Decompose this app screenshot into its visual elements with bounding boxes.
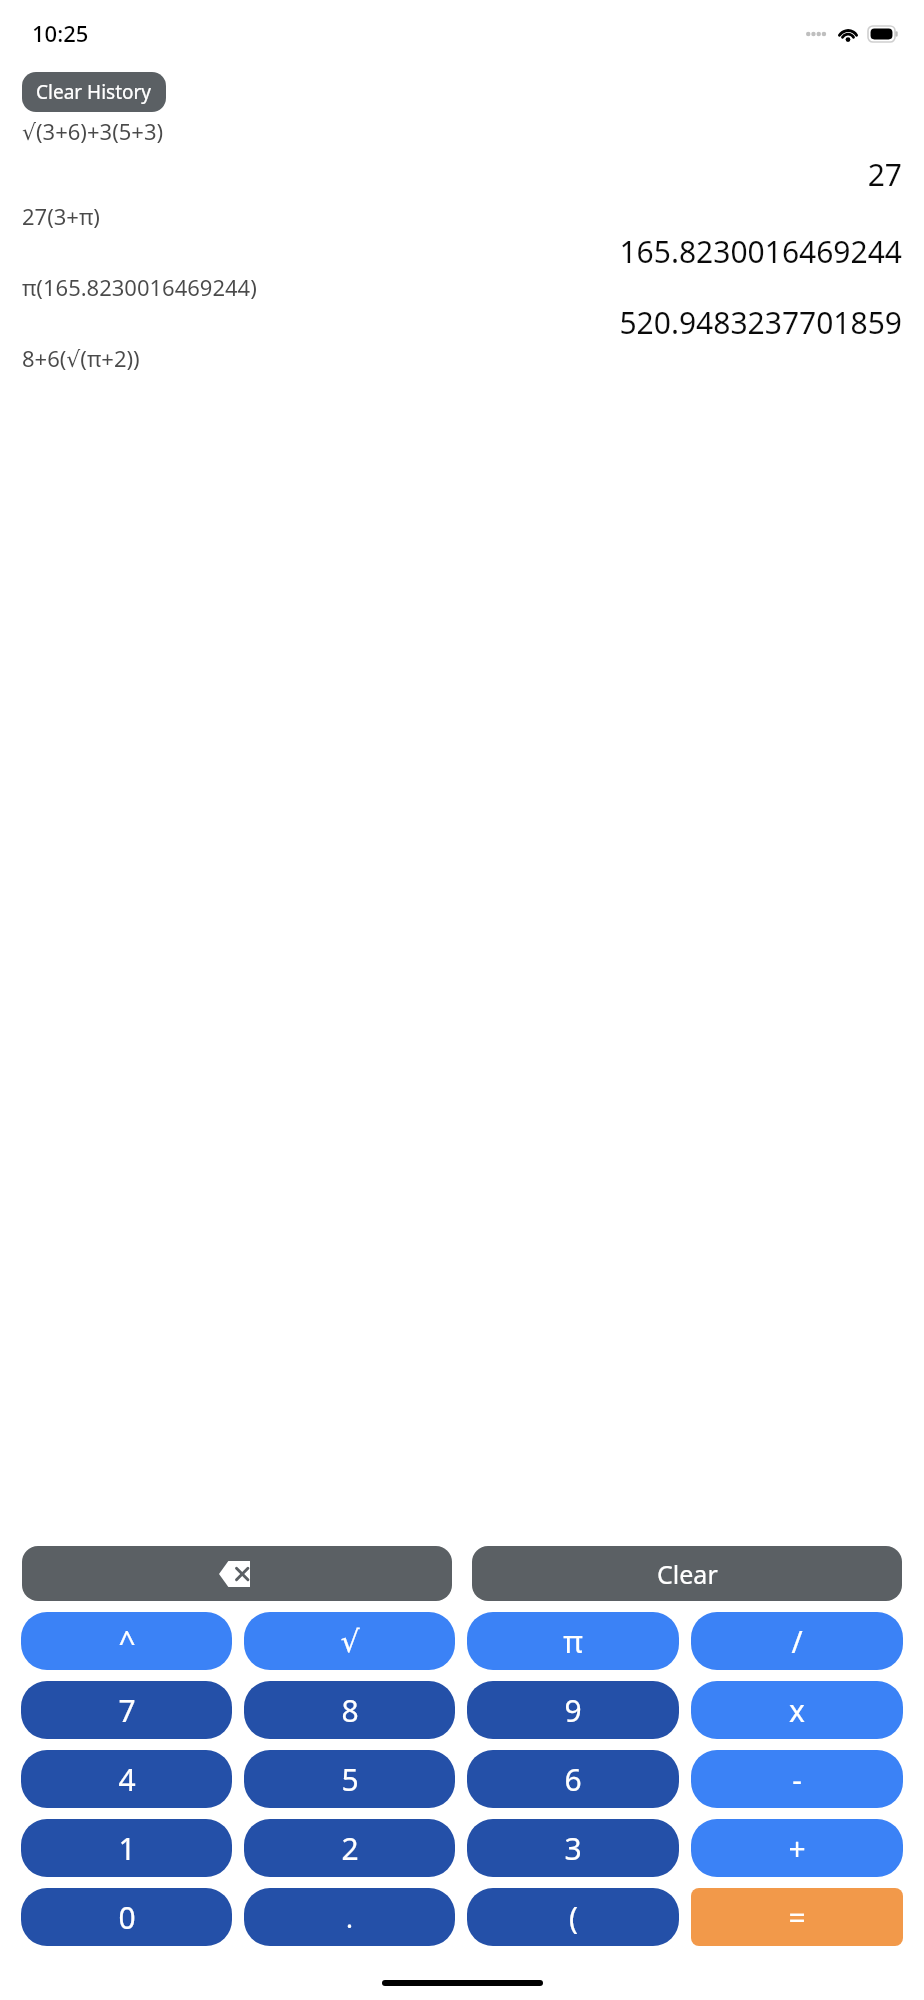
button[interactable]: 2 bbox=[244, 1819, 455, 1877]
button[interactable]: 0 bbox=[21, 1888, 232, 1946]
staticText: 8+6(√(π+2)) bbox=[22, 343, 902, 373]
staticText: 10:25 bbox=[32, 18, 89, 48]
button[interactable]: 4 bbox=[21, 1750, 232, 1808]
staticText: 27 bbox=[22, 154, 902, 195]
button[interactable]: 7 bbox=[21, 1681, 232, 1739]
staticText: √ bbox=[340, 1624, 360, 1659]
button[interactable]: 8 bbox=[244, 1681, 455, 1739]
staticText: Clear bbox=[657, 1557, 718, 1591]
button[interactable]: 5 bbox=[244, 1750, 455, 1808]
staticText: 9 bbox=[564, 1690, 582, 1731]
staticText: 2 bbox=[341, 1828, 359, 1869]
staticText: Clear History bbox=[36, 79, 152, 105]
staticText: x bbox=[789, 1690, 805, 1731]
button[interactable]: π bbox=[467, 1612, 679, 1670]
button[interactable]: / bbox=[691, 1612, 903, 1670]
button[interactable]: x bbox=[691, 1681, 903, 1739]
staticText: 7 bbox=[118, 1690, 136, 1731]
button[interactable]: 3 bbox=[467, 1819, 679, 1877]
button[interactable]: Clear History bbox=[22, 72, 166, 112]
staticText: ^ bbox=[118, 1621, 136, 1662]
staticText: 520.9483237701859 bbox=[22, 302, 902, 343]
button[interactable]: . bbox=[244, 1888, 455, 1946]
staticText: 165.8230016469244 bbox=[22, 231, 902, 272]
button[interactable]: Backspace bbox=[22, 1546, 452, 1601]
staticText: π bbox=[563, 1621, 583, 1662]
button[interactable]: = bbox=[691, 1888, 903, 1946]
staticText: √(3+6)+3(5+3) bbox=[22, 116, 902, 146]
staticText: 8 bbox=[341, 1690, 359, 1731]
button[interactable]: ( bbox=[467, 1888, 679, 1946]
staticText: π(165.8230016469244) bbox=[22, 272, 902, 302]
button[interactable]: + bbox=[691, 1819, 903, 1877]
button[interactable]: 1 bbox=[21, 1819, 232, 1877]
staticText: 5 bbox=[341, 1759, 359, 1800]
staticText: 0 bbox=[118, 1897, 136, 1938]
staticText: + bbox=[788, 1828, 806, 1869]
button[interactable]: 9 bbox=[467, 1681, 679, 1739]
staticText: 3 bbox=[564, 1828, 582, 1869]
button[interactable]: ^ bbox=[21, 1612, 232, 1670]
staticText: 6 bbox=[564, 1759, 582, 1800]
button[interactable]: 6 bbox=[467, 1750, 679, 1808]
staticText: - bbox=[792, 1759, 802, 1800]
button[interactable]: √ bbox=[244, 1612, 455, 1670]
staticText: 1 bbox=[118, 1828, 136, 1869]
button[interactable]: Clear bbox=[472, 1546, 902, 1601]
staticText: = bbox=[788, 1897, 806, 1938]
staticText: / bbox=[791, 1621, 803, 1662]
staticText: ( bbox=[569, 1897, 578, 1938]
staticText: 4 bbox=[118, 1759, 136, 1800]
staticText: 27(3+π) bbox=[22, 201, 902, 231]
staticText: . bbox=[346, 1900, 353, 1935]
button[interactable]: - bbox=[691, 1750, 903, 1808]
